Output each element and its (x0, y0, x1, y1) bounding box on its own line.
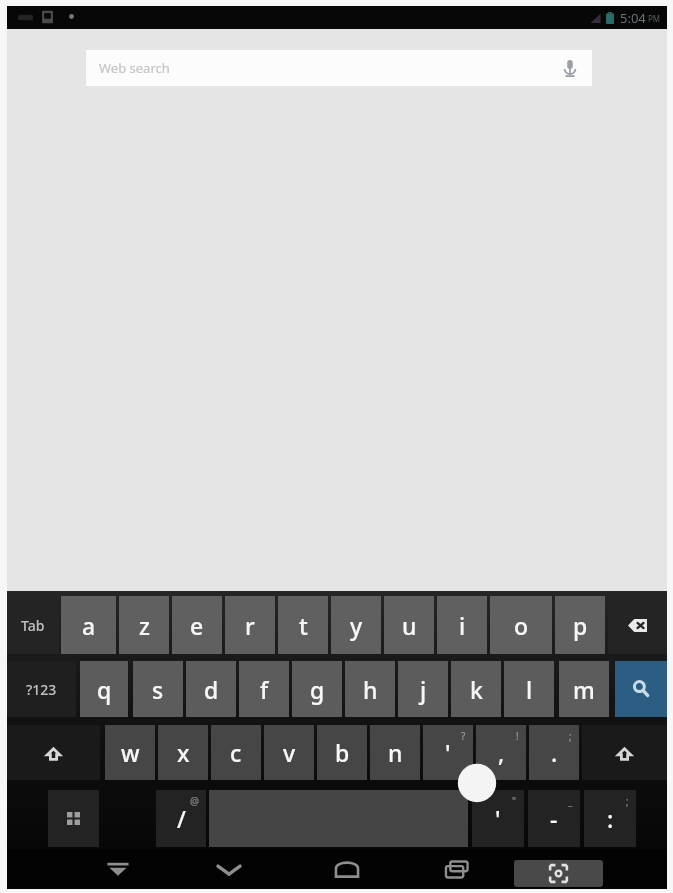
staticText: ' (445, 737, 451, 768)
button[interactable]: Search (615, 661, 667, 717)
staticText: / (177, 803, 186, 834)
staticText: ; (569, 729, 572, 743)
button[interactable]: . (529, 725, 579, 780)
staticText: Tab (21, 616, 45, 635)
staticText: : (607, 803, 614, 834)
staticText: c (230, 737, 242, 768)
staticText: 5:04 (620, 9, 646, 27)
button[interactable]: - (528, 790, 580, 847)
staticText: n (388, 737, 403, 768)
staticText: , (498, 737, 505, 768)
button[interactable]: y (331, 596, 381, 654)
button[interactable]: s (133, 661, 183, 717)
button[interactable]: k (451, 661, 501, 717)
staticText: PM (648, 13, 661, 24)
button[interactable]: w (105, 725, 155, 780)
staticText: t (299, 610, 308, 641)
staticText: _ (568, 794, 573, 808)
staticText: r (245, 610, 255, 641)
button[interactable]: Space (209, 790, 468, 847)
staticText: " (512, 794, 517, 808)
staticText: ' (495, 803, 501, 834)
staticText: d (204, 674, 219, 705)
button[interactable]: c (211, 725, 261, 780)
button[interactable]: i (437, 596, 487, 654)
button[interactable]: Web search (86, 50, 592, 86)
button[interactable]: Back (205, 849, 253, 889)
button[interactable]: Shift (582, 725, 667, 780)
button[interactable]: a (61, 596, 116, 654)
button[interactable]: u (384, 596, 434, 654)
staticText: b (335, 737, 350, 768)
staticText: e (190, 610, 204, 641)
button[interactable]: z (119, 596, 169, 654)
button[interactable]: f (239, 661, 289, 717)
button[interactable]: : (584, 790, 636, 847)
button[interactable]: t (278, 596, 328, 654)
button[interactable]: Screenshot (514, 860, 603, 887)
button[interactable]: d (186, 661, 236, 717)
button[interactable]: ' (423, 725, 473, 780)
staticText: ? (461, 729, 466, 743)
staticText: f (260, 674, 269, 705)
staticText: q (97, 674, 112, 705)
staticText: ! (516, 729, 519, 743)
button[interactable]: r (225, 596, 275, 654)
staticText: z (139, 610, 150, 641)
button[interactable]: x (158, 725, 208, 780)
button[interactable]: / (156, 790, 206, 847)
staticText: m (573, 674, 595, 705)
button[interactable]: l (504, 661, 554, 717)
button[interactable]: p (555, 596, 605, 654)
staticText: y (350, 610, 363, 641)
button[interactable]: q (80, 661, 128, 717)
button[interactable]: Switch input method (48, 790, 99, 847)
staticText: o (514, 610, 529, 641)
staticText: i (459, 610, 466, 641)
staticText: x (177, 737, 190, 768)
staticText: s (152, 674, 164, 705)
staticText: j (420, 674, 427, 705)
button[interactable]: Voice search (546, 50, 592, 86)
staticText: h (363, 674, 378, 705)
button[interactable]: v (264, 725, 314, 780)
staticText: l (526, 674, 533, 705)
staticText: ?123 (26, 680, 57, 699)
staticText: @ (190, 794, 199, 808)
staticText: w (121, 737, 140, 768)
staticText: v (283, 737, 296, 768)
button[interactable]: , (476, 725, 526, 780)
button[interactable]: m (559, 661, 609, 717)
button[interactable]: e (172, 596, 222, 654)
button[interactable]: Hide keyboard (94, 849, 142, 889)
button[interactable]: ?123 (7, 661, 76, 717)
staticText: Web search (99, 59, 170, 77)
staticText: a (82, 610, 96, 641)
staticText: u (402, 610, 417, 641)
button[interactable]: g (292, 661, 342, 717)
staticText: p (573, 610, 588, 641)
button[interactable]: b (317, 725, 367, 780)
staticText: k (470, 674, 483, 705)
button[interactable]: o (490, 596, 552, 654)
button[interactable]: Recent apps (433, 849, 481, 889)
button[interactable]: Shift (7, 725, 100, 780)
staticText: ; (626, 794, 629, 808)
button[interactable]: h (345, 661, 395, 717)
button[interactable]: Home (323, 849, 371, 889)
button[interactable]: n (370, 725, 420, 780)
button[interactable]: Tab (7, 596, 59, 654)
button[interactable]: Backspace (608, 596, 667, 654)
staticText: . (551, 737, 558, 768)
staticText: g (310, 674, 325, 705)
button[interactable]: ' (472, 790, 524, 847)
staticText: - (550, 803, 558, 834)
button[interactable]: j (398, 661, 448, 717)
